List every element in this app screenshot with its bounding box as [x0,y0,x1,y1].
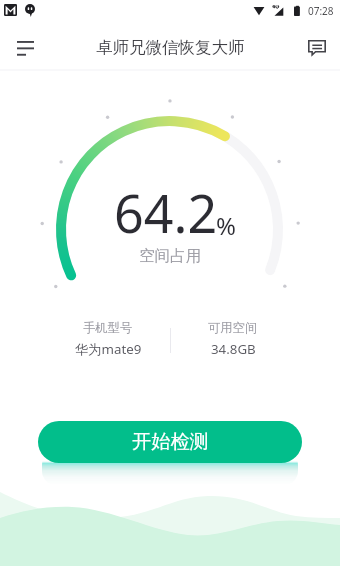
staticText: 34.8GB [211,340,256,358]
staticText: 开始检测 [132,430,209,454]
staticText: 空间占用 [139,246,201,266]
staticText: 可用空间 [208,320,258,335]
staticText: % [216,209,236,242]
staticText: 卓师兄微信恢复大师 [96,37,245,58]
button[interactable]: 开始检测 [38,421,302,463]
staticText: 64.2 [114,177,218,248]
staticText: 07:28 [308,4,334,18]
button[interactable]: Feedback [296,29,334,67]
button[interactable]: Menu [6,29,44,67]
staticText: 华为mate9 [75,340,142,358]
staticText: 手机型号 [83,320,133,335]
